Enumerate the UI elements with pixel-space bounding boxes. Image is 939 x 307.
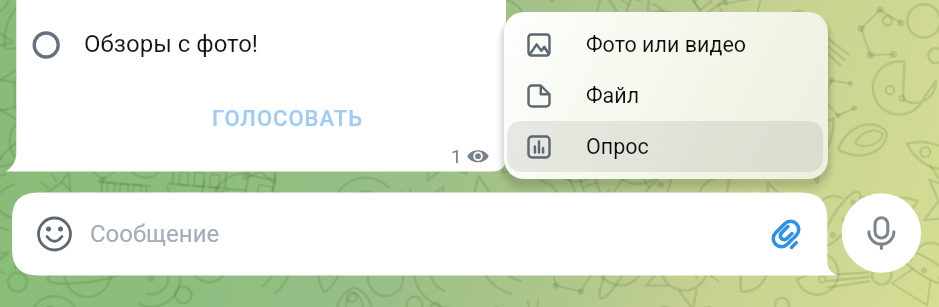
staticText: Опрос	[586, 134, 649, 159]
button[interactable]: Опрос	[507, 121, 823, 172]
staticText: Обзоры с фото!	[84, 30, 259, 58]
staticText: ГОЛОСОВАТЬ	[212, 106, 364, 132]
staticText: Фото или видео	[586, 32, 747, 57]
button[interactable]: Файл	[507, 70, 823, 121]
staticText: Файл	[586, 83, 640, 108]
button[interactable]: Attach	[763, 208, 815, 260]
button[interactable]: ГОЛОСОВАТЬ	[188, 98, 388, 140]
button[interactable]: Фото или видео	[507, 19, 823, 70]
staticText: Сообщение	[90, 220, 220, 248]
button[interactable]: Record voice message	[843, 196, 920, 273]
button[interactable]: Обзоры с фото!	[19, 18, 449, 70]
button[interactable]: Emoji	[31, 210, 79, 258]
staticText: 1	[451, 145, 462, 167]
button[interactable]: Сообщение	[84, 206, 734, 262]
